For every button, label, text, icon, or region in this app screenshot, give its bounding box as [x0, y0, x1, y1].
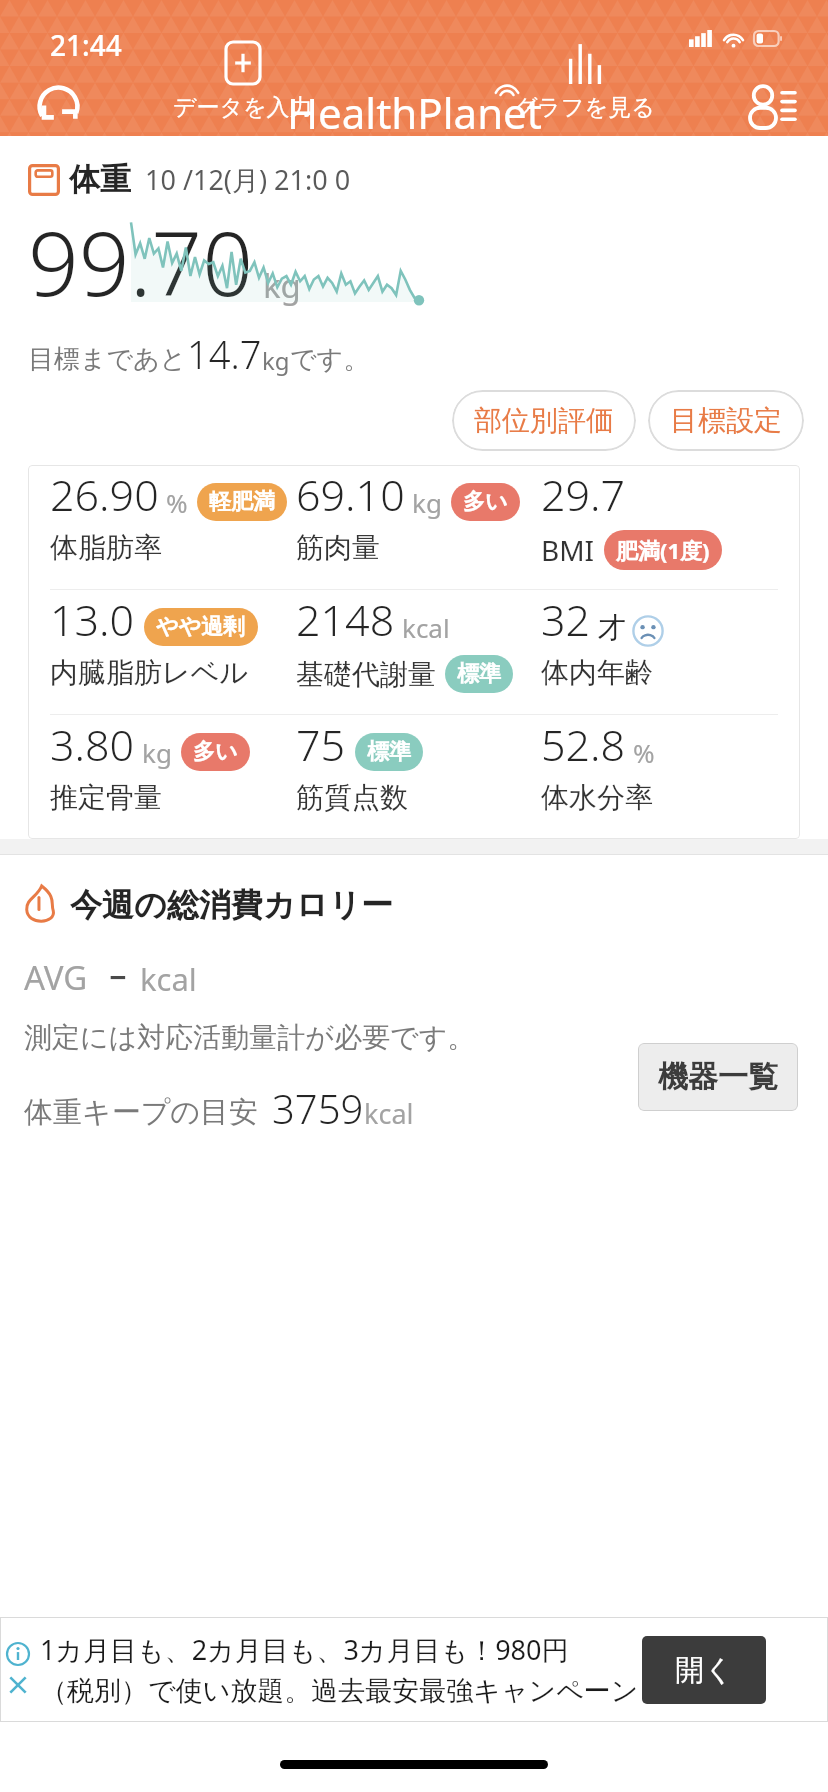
staticText: 基礎代謝量 [296, 657, 436, 692]
staticText: やや過剰 [156, 613, 246, 641]
staticText: 29.7 [541, 465, 626, 524]
staticText: 26.90 [50, 465, 159, 524]
button[interactable]: 2148 [296, 590, 541, 693]
button[interactable]: 69.10 [296, 465, 541, 565]
staticText: kcal [402, 610, 450, 645]
button[interactable]: 75 [296, 715, 541, 815]
staticText: kg [412, 485, 442, 520]
staticText: AVG [24, 955, 88, 1000]
staticText: kcal [364, 1095, 414, 1132]
staticText: 体脂肪率 [50, 530, 162, 565]
staticText: 今週の総消費カロリー [70, 885, 393, 925]
staticText: 体重キープの目安 [24, 1094, 259, 1131]
staticText: 13.0 [50, 590, 135, 649]
staticText: kg [142, 735, 172, 770]
staticText: kcal [140, 958, 197, 1000]
staticText: 体重 [69, 160, 131, 199]
button[interactable]: 3.80 [50, 715, 296, 815]
staticText: 14.7 [187, 328, 262, 380]
staticText: 推定骨量 [50, 780, 162, 815]
staticText: 多い [463, 488, 508, 516]
button[interactable]: Sync [22, 76, 94, 136]
staticText: です。 [290, 343, 370, 376]
staticText: 21:44 [50, 26, 122, 64]
button[interactable]: Close ad [6, 1673, 30, 1697]
staticText: % [633, 735, 655, 770]
button[interactable]: Profile [734, 76, 806, 136]
staticText: 部位別評価 [474, 403, 614, 438]
button[interactable]: グラフを見る [486, 38, 683, 126]
staticText: 1カ月目も、2カ月目も、3カ月目も！980円 [40, 1631, 569, 1668]
staticText: グラフを見る [514, 93, 655, 122]
staticText: HealthPlanet [287, 84, 542, 136]
staticText: kg [263, 263, 301, 308]
staticText: 3.80 [50, 715, 135, 774]
button[interactable]: 26.90 [50, 465, 296, 565]
staticText: 69.10 [296, 465, 405, 524]
staticText: 才 [598, 610, 626, 645]
button[interactable]: 29.7 [541, 465, 786, 570]
staticText: 測定には対応活動量計が必要です。 [24, 1020, 476, 1055]
staticText: － [102, 958, 132, 996]
staticText: 75 [296, 715, 346, 774]
staticText: 52.8 [541, 715, 626, 774]
staticText: 筋肉量 [296, 530, 380, 565]
button[interactable]: 52.8 [541, 715, 786, 815]
staticText: 筋質点数 [296, 780, 408, 815]
button[interactable]: 13.0 [50, 590, 296, 690]
staticText: BMI [541, 531, 595, 569]
staticText: 標準 [457, 660, 501, 688]
staticText: データを入力 [173, 93, 313, 122]
staticText: 機器一覧 [658, 1058, 778, 1096]
staticText: 肥満(1度) [616, 535, 710, 565]
staticText: 99.70 [28, 201, 253, 322]
staticText: 体内年齢 [541, 655, 653, 690]
staticText: % [166, 485, 188, 520]
staticText: 体水分率 [541, 780, 653, 815]
button[interactable]: 目標設定 [648, 390, 804, 451]
staticText: 目標まであと [28, 343, 187, 376]
button[interactable]: Ad info [0, 1617, 828, 1722]
staticText: kg [262, 344, 290, 377]
button[interactable]: 機器一覧 [638, 1043, 798, 1111]
staticText: （税別）で使い放題。過去最安最強キャンペーン [40, 1674, 639, 1708]
button[interactable]: データを入力 [145, 38, 341, 126]
staticText: 3759 [272, 1081, 364, 1135]
staticText: 32 [541, 590, 591, 649]
staticText: 開く [675, 1652, 734, 1689]
staticText: 2148 [296, 590, 395, 649]
staticText: 多い [193, 738, 238, 766]
button[interactable]: Ad info [6, 1642, 30, 1666]
staticText: 標準 [367, 738, 411, 766]
button[interactable]: 部位別評価 [452, 390, 636, 451]
staticText: 10 /12(月) 21:0 0 [145, 161, 351, 198]
button[interactable]: 32 [541, 590, 786, 690]
staticText: 目標設定 [670, 403, 782, 438]
staticText: 軽肥満 [209, 488, 275, 516]
button[interactable]: 開く [642, 1636, 766, 1704]
staticText: 内臓脂肪レベル [50, 655, 248, 690]
